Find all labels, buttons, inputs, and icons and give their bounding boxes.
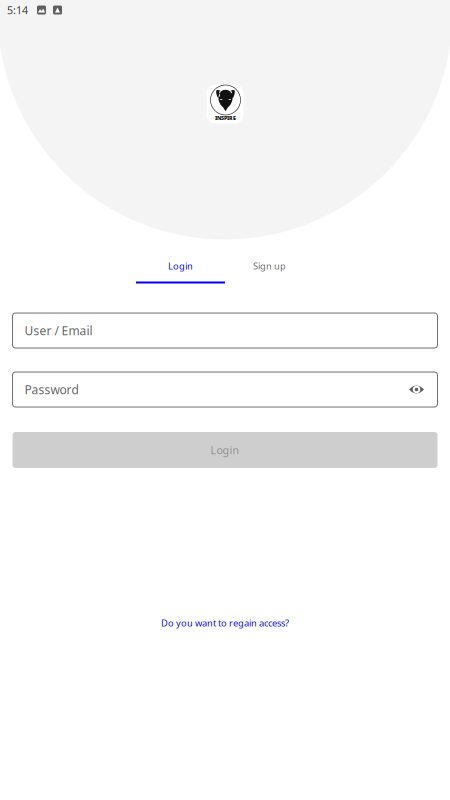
staticText: Login xyxy=(168,260,193,272)
staticText: User / Email xyxy=(24,322,92,338)
button[interactable]: Login xyxy=(136,260,225,283)
button[interactable]: Sign up xyxy=(225,260,314,283)
staticText: Password xyxy=(24,381,78,397)
staticText: INSPIRE xyxy=(215,114,236,122)
staticText: Sign up xyxy=(253,260,286,272)
button[interactable]: Do you want to regain access? xyxy=(161,616,289,630)
button[interactable]: Login xyxy=(12,432,437,468)
button[interactable]: Show password xyxy=(408,383,424,396)
staticText: 5:14 xyxy=(7,3,28,17)
staticText: Login xyxy=(210,443,239,457)
staticText: Do you want to regain access? xyxy=(161,617,289,629)
